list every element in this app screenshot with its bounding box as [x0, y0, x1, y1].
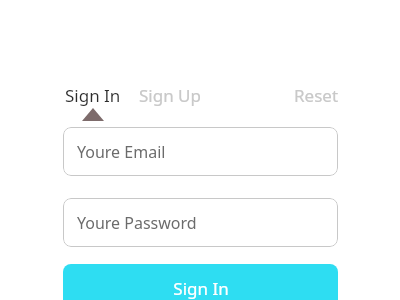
staticText: Youre Email: [77, 141, 166, 163]
staticText: Sign Up: [139, 84, 201, 107]
staticText: Reset: [294, 84, 339, 107]
button[interactable]: Sign In: [63, 264, 338, 300]
button[interactable]: Sign Up: [137, 82, 203, 109]
staticText: Youre Password: [77, 212, 197, 234]
button[interactable]: Youre Email: [63, 127, 338, 176]
button[interactable]: Reset: [292, 82, 341, 109]
button[interactable]: Youre Password: [63, 198, 338, 247]
staticText: Sign In: [173, 277, 229, 300]
staticText: Sign In: [65, 84, 121, 107]
button[interactable]: Sign In: [63, 82, 123, 109]
